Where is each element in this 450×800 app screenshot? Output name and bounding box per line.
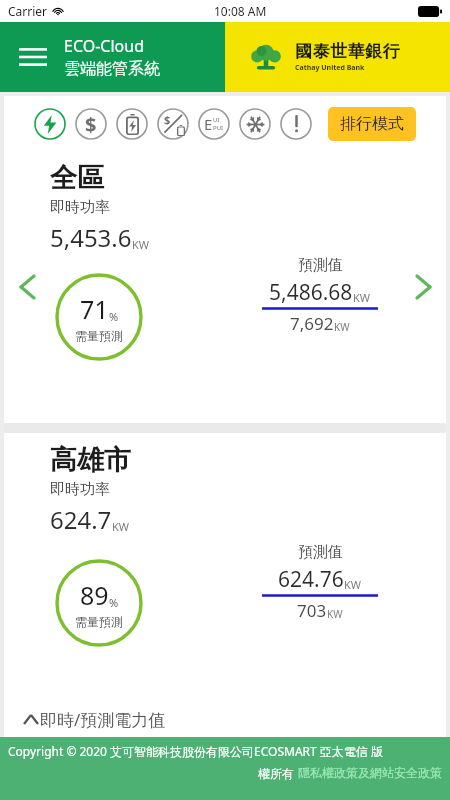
staticText: 即時功率 <box>50 198 110 217</box>
staticText: 需量預測 <box>75 614 123 629</box>
staticText: 5,453.6 <box>50 221 132 254</box>
button[interactable]: 全區 <box>4 151 446 423</box>
staticText: 5,486.68 <box>269 278 353 307</box>
staticText: 624.7 <box>50 503 112 536</box>
staticText: 預測值 <box>298 256 343 275</box>
staticText: 703 <box>297 599 327 622</box>
button[interactable]: 隱私權政策及網站安全政策 <box>298 765 442 780</box>
button[interactable]: 即時/預測電力值 <box>24 701 446 737</box>
staticText: 雲端能管系統 <box>64 59 160 79</box>
staticText: 全區 <box>50 161 104 195</box>
button[interactable]: Mode 3 <box>157 108 189 140</box>
staticText: 即時功率 <box>50 480 110 499</box>
staticText: 國泰世華銀行 <box>295 41 400 62</box>
button[interactable]: Menu <box>16 40 50 74</box>
staticText: KW <box>344 577 362 592</box>
staticText: UI <box>213 116 220 124</box>
staticText: 預測值 <box>298 543 343 562</box>
button[interactable]: Mode 1 <box>75 108 107 140</box>
staticText: Copyright © 2020 艾可智能科技股份有限公司ECOSMART 亞太… <box>8 743 442 759</box>
button[interactable]: Menu <box>0 22 225 92</box>
staticText: 71 <box>80 292 109 326</box>
button[interactable]: Next <box>408 272 438 302</box>
staticText: ECO-Cloud <box>64 35 144 57</box>
staticText: 10:08 AM <box>214 3 267 19</box>
staticText: 權所有 <box>258 765 298 781</box>
button[interactable]: 高雄市 <box>4 433 446 691</box>
staticText: Carrier <box>8 3 48 19</box>
button[interactable]: Previous <box>12 272 42 302</box>
staticText: 高雄市 <box>50 443 131 477</box>
staticText: KW <box>327 607 343 621</box>
staticText: $ <box>85 111 97 138</box>
button[interactable]: Mode 4 <box>198 108 230 140</box>
staticText: KW <box>353 290 371 305</box>
staticText: $ <box>164 112 171 127</box>
staticText: % <box>109 595 119 610</box>
staticText: KW <box>112 519 130 534</box>
button[interactable]: 國泰世華銀行 <box>225 22 450 92</box>
staticText: 即時/預測電力值 <box>40 708 166 731</box>
button[interactable]: Mode 0 <box>34 108 66 140</box>
staticText: 89 <box>80 578 109 612</box>
button[interactable]: 排行模式 <box>328 107 416 141</box>
staticText: 需量預測 <box>75 328 123 343</box>
staticText: 7,692 <box>290 312 334 335</box>
button[interactable]: Mode 6 <box>280 108 312 140</box>
staticText: KW <box>334 320 350 334</box>
button[interactable]: Mode 2 <box>116 108 148 140</box>
staticText: 隱私權政策及網站安全政策 <box>298 765 442 780</box>
staticText: % <box>109 309 119 324</box>
staticText: 排行模式 <box>340 114 404 134</box>
staticText: 624.76 <box>278 565 344 594</box>
staticText: KW <box>132 237 150 252</box>
button[interactable]: Mode 5 <box>239 108 271 140</box>
staticText: PUI <box>213 124 224 132</box>
staticText: Cathay United Bank <box>295 63 365 73</box>
staticText: E <box>204 114 213 134</box>
